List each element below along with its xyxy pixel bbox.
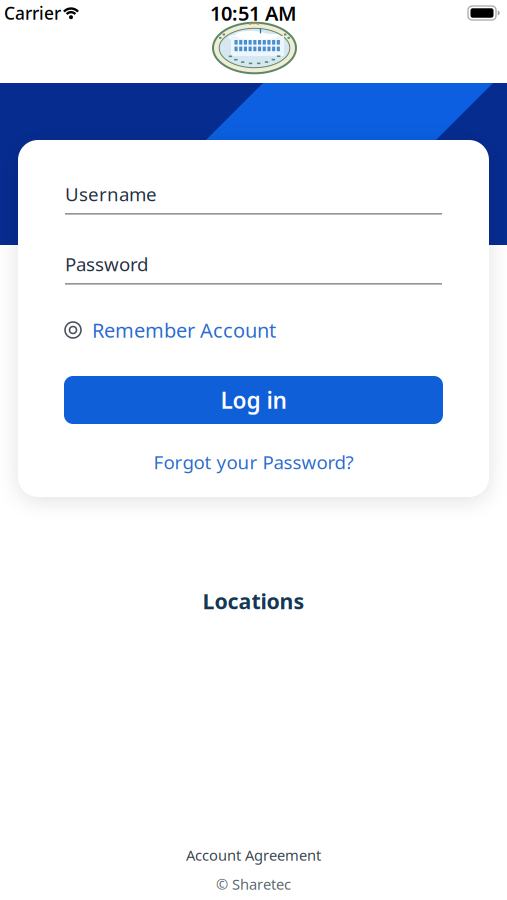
staticText: 10:51 AM: [210, 0, 297, 26]
staticText: Log in: [220, 385, 286, 415]
staticText: Account Agreement: [186, 845, 321, 865]
staticText: Forgot your Password?: [153, 450, 353, 474]
button[interactable]: Log in: [64, 376, 443, 424]
button[interactable]: Forgot your Password?: [153, 450, 353, 474]
button[interactable]: Password: [65, 252, 442, 284]
button[interactable]: Remember Account: [65, 317, 442, 343]
staticText: Password: [65, 252, 148, 276]
button[interactable]: Account Agreement: [186, 845, 321, 865]
button[interactable]: Username: [65, 182, 442, 214]
staticText: Username: [65, 182, 157, 206]
staticText: Carrier: [4, 1, 61, 24]
staticText: © Sharetec: [216, 874, 291, 894]
staticText: Locations: [202, 587, 304, 615]
staticText: Remember Account: [92, 317, 276, 343]
button[interactable]: Locations: [202, 587, 304, 615]
